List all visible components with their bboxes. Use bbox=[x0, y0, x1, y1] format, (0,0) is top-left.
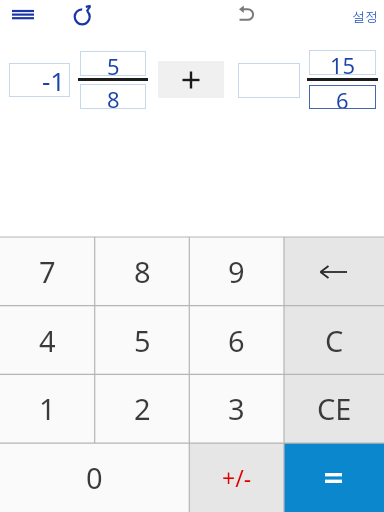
button[interactable]: 6 bbox=[189, 306, 284, 375]
button[interactable] bbox=[8, 6, 38, 26]
button[interactable] bbox=[284, 237, 384, 306]
staticText: 2 bbox=[134, 389, 151, 428]
staticText: 설정 bbox=[352, 8, 378, 24]
button[interactable]: 5 bbox=[80, 51, 146, 76]
staticText: 5 bbox=[134, 321, 151, 360]
button[interactable]: 4 bbox=[0, 306, 95, 375]
button[interactable]: 8 bbox=[80, 84, 146, 109]
button[interactable]: -1 bbox=[9, 63, 70, 97]
button[interactable]: 6 bbox=[309, 85, 376, 109]
staticText: 6 bbox=[336, 85, 349, 109]
staticText: C bbox=[325, 321, 344, 360]
staticText: -1 bbox=[42, 63, 66, 97]
staticText: 5 bbox=[107, 51, 120, 76]
staticText: 1 bbox=[39, 389, 56, 428]
button[interactable]: 8 bbox=[95, 237, 190, 306]
button[interactable]: 2 bbox=[95, 374, 190, 443]
button[interactable] bbox=[158, 61, 224, 98]
button[interactable]: 3 bbox=[189, 374, 284, 443]
staticText: 9 bbox=[228, 252, 245, 291]
staticText: 4 bbox=[39, 321, 56, 360]
button[interactable]: CE bbox=[284, 374, 384, 443]
staticText: +/- bbox=[222, 462, 252, 493]
button[interactable] bbox=[284, 443, 384, 512]
button[interactable] bbox=[234, 3, 258, 27]
staticText: 15 bbox=[330, 50, 356, 75]
button[interactable]: 9 bbox=[189, 237, 284, 306]
staticText: 3 bbox=[228, 389, 245, 428]
button[interactable]: +/- bbox=[189, 443, 284, 512]
staticText: 8 bbox=[107, 84, 120, 109]
staticText: 7 bbox=[39, 252, 56, 291]
button[interactable]: 0 bbox=[0, 443, 189, 512]
button[interactable]: 5 bbox=[95, 306, 190, 375]
button[interactable]: 7 bbox=[0, 237, 95, 306]
staticText: 0 bbox=[86, 458, 103, 497]
staticText: 6 bbox=[228, 321, 245, 360]
button[interactable]: C bbox=[284, 306, 384, 375]
staticText: CE bbox=[317, 389, 352, 428]
button[interactable]: 1 bbox=[0, 374, 95, 443]
button[interactable] bbox=[70, 4, 96, 30]
button[interactable]: 설정 bbox=[340, 4, 378, 28]
button[interactable] bbox=[238, 63, 300, 98]
button[interactable]: 15 bbox=[309, 50, 376, 75]
staticText: 8 bbox=[134, 252, 151, 291]
